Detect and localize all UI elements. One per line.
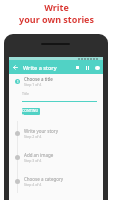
staticText: Add an image (24, 152, 54, 158)
staticText: CONTINUE (22, 108, 40, 115)
staticText: 1 (17, 80, 19, 84)
button[interactable]: 1 (9, 74, 103, 88)
button[interactable]: Back (11, 63, 20, 72)
staticText: Step 3 of 4 (24, 158, 42, 163)
button[interactable]: Add an image (9, 145, 103, 169)
button[interactable]: Write your story (9, 121, 103, 145)
staticText: Write (44, 1, 69, 13)
staticText: Step 1 of 4 (24, 82, 42, 87)
staticText: Step 2 of 4 (24, 134, 42, 139)
button[interactable]: Save (93, 63, 102, 72)
staticText: Write a story (23, 64, 57, 71)
button[interactable]: Choose a category (9, 169, 103, 193)
staticText: Step 4 of 4 (24, 182, 42, 187)
button[interactable]: CONTINUE (22, 108, 40, 115)
button[interactable]: Redo (83, 63, 92, 72)
staticText: Write your story (24, 128, 58, 134)
button[interactable]: Undo (73, 63, 82, 72)
staticText: Choose a title (24, 76, 53, 82)
staticText: Choose a category (24, 176, 64, 182)
staticText: your own stories (19, 13, 94, 25)
staticText: Title (22, 91, 29, 96)
